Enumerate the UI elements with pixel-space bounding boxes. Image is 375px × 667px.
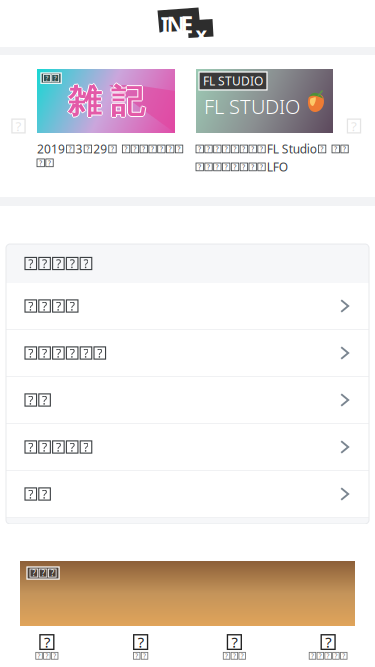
staticText: ? xyxy=(260,144,263,153)
staticText: ? xyxy=(151,144,154,153)
staticText: ? xyxy=(251,144,254,153)
staticText: ? xyxy=(53,651,56,660)
staticText: ? xyxy=(233,144,236,153)
staticText: ? xyxy=(321,144,324,153)
button[interactable]: Tab xyxy=(0,627,94,667)
staticText: FL Studio xyxy=(267,141,317,157)
staticText: ? xyxy=(42,392,47,408)
staticText: ? xyxy=(142,144,145,153)
staticText: ? xyxy=(319,651,322,660)
staticText: 雑 記 xyxy=(67,81,143,122)
staticText: ? xyxy=(39,158,42,167)
staticText: ? xyxy=(251,162,254,171)
button[interactable]: Tab xyxy=(94,627,188,667)
staticText: ? xyxy=(28,255,33,271)
staticText: 雑 記 xyxy=(68,82,144,123)
staticText: ? xyxy=(56,255,61,271)
staticText: ? xyxy=(207,162,210,171)
staticText: ? xyxy=(343,144,346,153)
staticText: ? xyxy=(225,144,228,153)
staticText: ? xyxy=(97,345,102,361)
staticText: ? xyxy=(86,144,89,153)
button[interactable]: 雑 記 xyxy=(37,55,175,197)
staticText: ? xyxy=(334,651,337,660)
staticText: ? xyxy=(45,651,48,660)
staticText: x xyxy=(195,20,207,47)
staticText: ? xyxy=(42,486,47,502)
staticText: ? xyxy=(56,298,61,314)
staticText: ? xyxy=(125,144,128,153)
staticText: ? xyxy=(70,439,75,455)
staticText: 29 xyxy=(93,141,107,157)
staticText: ? xyxy=(233,162,236,171)
button[interactable]: Next xyxy=(333,55,375,197)
staticText: ? xyxy=(83,439,88,455)
staticText: ? xyxy=(241,651,244,660)
staticText: E xyxy=(180,9,193,40)
staticText: ? xyxy=(231,632,237,652)
staticText: ? xyxy=(54,74,57,83)
staticText: ? xyxy=(38,651,41,660)
staticText: ? xyxy=(28,392,33,408)
staticText: ? xyxy=(242,162,245,171)
staticText: ? xyxy=(242,144,245,153)
button[interactable]: ? xyxy=(6,471,369,518)
button[interactable]: INEx home xyxy=(0,0,375,47)
staticText: ? xyxy=(198,162,201,171)
staticText: ? xyxy=(45,74,48,83)
staticText: 3 xyxy=(76,141,83,157)
staticText: ? xyxy=(327,651,330,660)
staticText: ? xyxy=(70,298,75,314)
button[interactable]: FL STUDIO xyxy=(196,55,333,197)
staticText: ? xyxy=(42,439,47,455)
button[interactable]: ? xyxy=(6,330,369,377)
staticText: ? xyxy=(216,162,219,171)
button[interactable]: Tab xyxy=(187,627,281,667)
staticText: ? xyxy=(83,255,88,271)
button[interactable]: Featured article xyxy=(20,561,355,626)
staticText: N xyxy=(166,10,184,40)
staticText: 雑 記 xyxy=(68,80,144,121)
staticText: ? xyxy=(70,345,75,361)
staticText: ? xyxy=(133,144,136,153)
staticText: FL STUDIO xyxy=(203,73,263,89)
staticText: ? xyxy=(56,439,61,455)
button[interactable]: ? xyxy=(6,377,369,424)
staticText: ? xyxy=(83,345,88,361)
staticText: ? xyxy=(143,651,146,660)
staticText: ? xyxy=(178,144,181,153)
staticText: ? xyxy=(28,298,33,314)
staticText: ? xyxy=(325,632,331,652)
button[interactable]: Previous xyxy=(0,55,37,197)
staticText: ? xyxy=(351,117,357,135)
staticText: ? xyxy=(28,345,33,361)
staticText: ? xyxy=(342,651,345,660)
staticText: ? xyxy=(334,144,337,153)
staticText: ? xyxy=(198,144,201,153)
staticText: 雑 記 xyxy=(69,81,145,122)
staticText: ? xyxy=(28,486,33,502)
button[interactable]: Tab xyxy=(281,627,375,667)
staticText: ? xyxy=(216,144,219,153)
staticText: ? xyxy=(42,255,47,271)
staticText: ? xyxy=(15,117,21,135)
staticText: ? xyxy=(260,162,263,171)
staticText: ? xyxy=(207,144,210,153)
staticText: ? xyxy=(311,651,314,660)
staticText: ? xyxy=(51,568,54,578)
staticText: ? xyxy=(169,144,172,153)
staticText: ? xyxy=(70,255,75,271)
staticText: ? xyxy=(135,651,138,660)
staticText: ? xyxy=(28,439,33,455)
staticText: ? xyxy=(48,158,51,167)
staticText: I xyxy=(160,10,169,41)
staticText: ? xyxy=(69,144,72,153)
button[interactable]: ? xyxy=(6,283,369,330)
button[interactable]: ? xyxy=(6,424,369,471)
staticText: ? xyxy=(160,144,163,153)
staticText: ? xyxy=(111,144,114,153)
staticText: ? xyxy=(42,568,45,578)
staticText: LFO xyxy=(267,159,288,175)
